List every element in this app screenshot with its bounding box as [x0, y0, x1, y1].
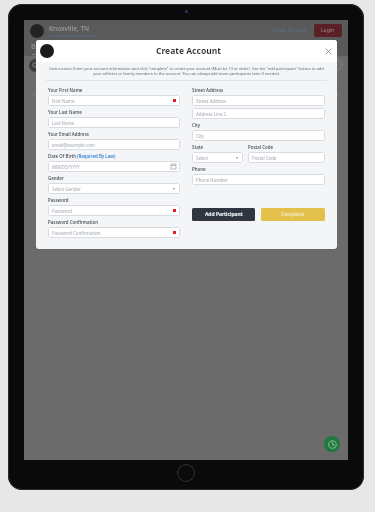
button[interactable]: Create Account — [269, 25, 309, 36]
staticText: Your Last Name — [48, 109, 82, 115]
staticText: Add Participant — [205, 211, 243, 218]
button[interactable]: 30 — [122, 84, 164, 106]
staticText: (Required By Law) — [77, 153, 116, 159]
staticText: May — [269, 95, 277, 100]
button[interactable]: Phone Number — [192, 174, 325, 185]
button[interactable]: ‹ — [29, 90, 40, 100]
button[interactable]: 4 — [290, 84, 332, 106]
staticText: Password — [52, 208, 72, 214]
staticText: MM/DD/YYYY — [52, 164, 80, 170]
staticText: 1 — [178, 90, 183, 101]
staticText: Sun — [63, 90, 70, 95]
staticText: 3 — [262, 90, 267, 101]
staticText: Street Address — [192, 87, 224, 93]
button[interactable]: Search — [29, 59, 42, 72]
button[interactable]: Last Name — [48, 117, 180, 128]
staticText: Create Account — [271, 27, 307, 34]
button[interactable]: All locations selected — [210, 59, 288, 71]
staticText: All staff selected — [133, 62, 167, 68]
staticText: 2 — [220, 90, 225, 101]
staticText: Date Of Birth — [48, 153, 77, 159]
button[interactable]: email@example.com — [48, 139, 180, 150]
staticText: Browse Events — [31, 42, 79, 52]
staticText: Wed — [185, 90, 193, 95]
button[interactable]: First Name — [48, 95, 180, 106]
staticText: Instructions: Enter your account informa… — [48, 66, 325, 76]
staticText: ▾ — [173, 186, 176, 191]
staticText: Gender — [48, 175, 64, 181]
staticText: Address Line 2 — [196, 111, 227, 117]
staticText: Select Gender — [52, 186, 81, 192]
staticText: Your Email Address — [48, 131, 90, 137]
button[interactable]: MM/DD/YYYY — [48, 161, 180, 172]
staticText: City — [196, 133, 204, 139]
button[interactable]: Password — [48, 205, 180, 216]
staticText: Login — [321, 27, 335, 34]
staticText: City — [192, 122, 201, 128]
button[interactable]: 3 — [248, 84, 290, 106]
staticText: May — [311, 95, 319, 100]
button[interactable]: Select — [192, 152, 243, 163]
staticText: 29 — [92, 90, 102, 101]
staticText: First Name — [52, 98, 75, 104]
staticText: ▾ — [236, 155, 239, 160]
button[interactable]: All staff selected — [128, 59, 206, 71]
staticText: Select — [196, 155, 209, 161]
staticText: ▾ — [335, 63, 338, 68]
staticText: Your First Name — [48, 87, 83, 93]
staticText: soccerplayeracademy.com/ — [49, 33, 98, 38]
button[interactable]: All categories selected — [47, 59, 124, 71]
staticText: Create Account — [156, 45, 221, 57]
button[interactable]: Select Gender — [48, 183, 180, 194]
staticText: Apr — [146, 95, 152, 100]
button[interactable]: Login — [314, 24, 342, 37]
staticText: Complete — [281, 211, 305, 218]
staticText: May — [185, 95, 193, 100]
button[interactable]: Browse Events — [31, 42, 79, 55]
staticText: Knoxville, TN — [49, 24, 90, 33]
staticText: Postal Code — [252, 155, 277, 161]
staticText: 28 — [51, 90, 61, 101]
button[interactable]: Complete — [261, 208, 325, 221]
button[interactable]: Help chat — [324, 436, 340, 452]
staticText: Apr — [104, 95, 110, 100]
staticText: State — [192, 144, 204, 150]
staticText: ▾ — [280, 63, 283, 68]
staticText: Week View — [297, 62, 320, 68]
button[interactable]: 2 — [206, 84, 248, 106]
staticText: Last Name — [52, 120, 74, 126]
staticText: May — [227, 95, 235, 100]
button[interactable]: Postal Code — [248, 152, 325, 163]
button[interactable]: Address Line 2 — [192, 108, 325, 119]
button[interactable]: City — [192, 130, 325, 141]
staticText: Street Address — [196, 98, 227, 104]
button[interactable]: 1 — [164, 84, 206, 106]
staticText: Sun, Apr 28, 2024 — Sat, May 04, 2024 — [145, 74, 228, 80]
button[interactable]: 29 — [81, 84, 122, 106]
staticText: Apr — [63, 95, 69, 100]
button[interactable]: Add Participant — [192, 208, 255, 221]
staticText: All categories selected — [52, 62, 98, 68]
staticText: Password Confirmation — [52, 230, 101, 236]
button[interactable]: Street Address — [192, 95, 325, 106]
button[interactable]: Password Confirmation — [48, 227, 180, 238]
staticText: Password Confirmation — [48, 219, 99, 225]
staticText: Postal Code — [248, 144, 274, 150]
staticText: Phone — [192, 166, 206, 172]
button[interactable]: 28 — [40, 84, 81, 106]
staticText: No results — [174, 109, 198, 116]
staticText: email@example.com — [52, 142, 95, 148]
staticText: Password — [48, 197, 69, 203]
button[interactable]: › — [332, 90, 343, 100]
button[interactable]: Week View — [292, 59, 343, 71]
button[interactable]: Close — [323, 46, 333, 56]
staticText: All locations selected — [215, 62, 258, 68]
